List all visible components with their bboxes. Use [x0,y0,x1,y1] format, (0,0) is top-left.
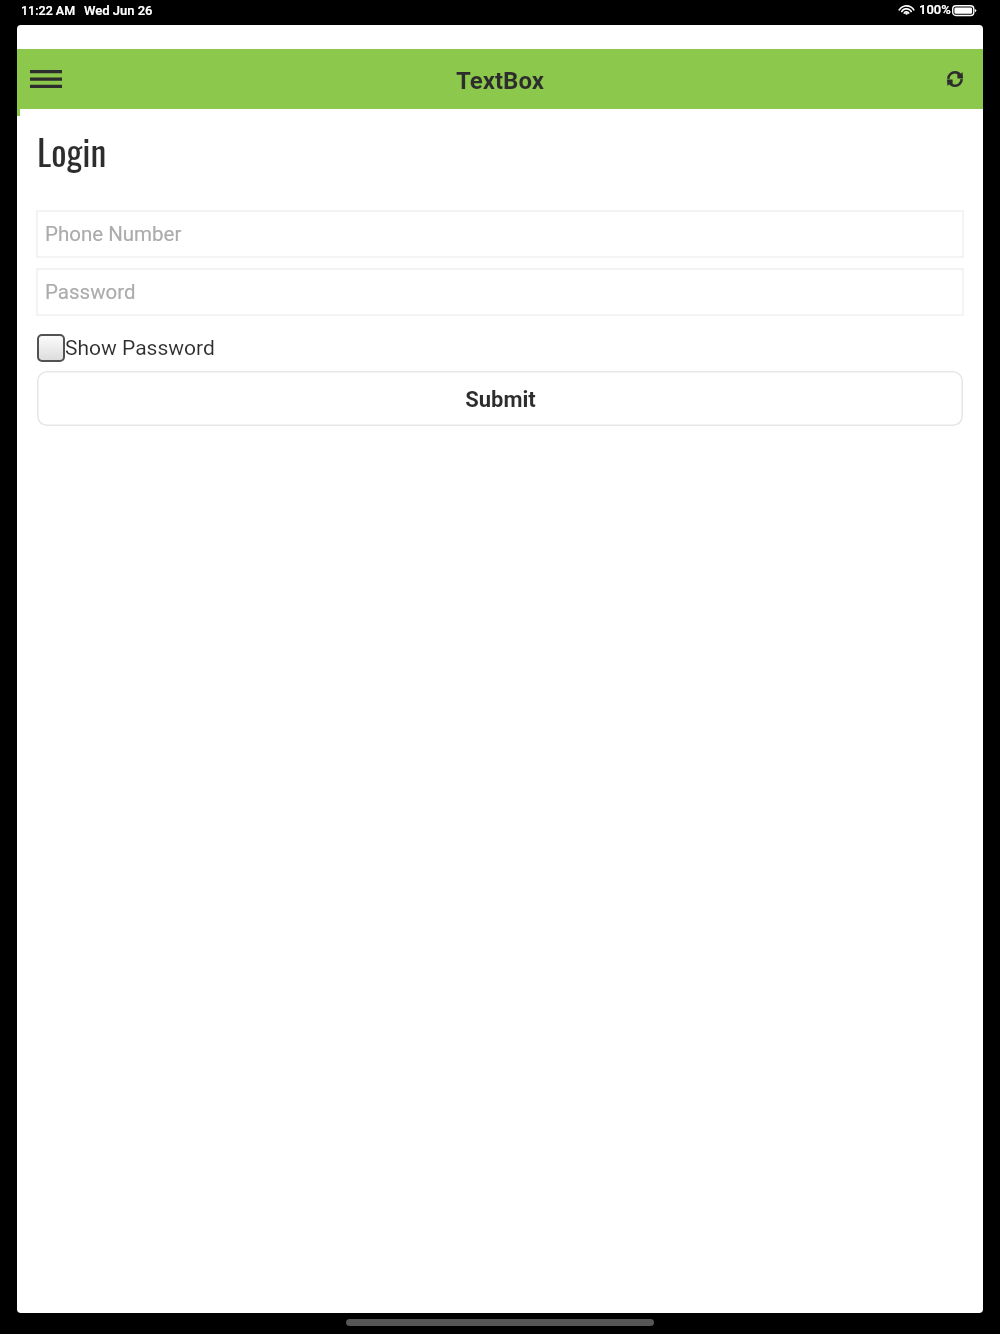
other: Battery full [952,5,978,17]
staticText: Wed Jun 26 [84,3,153,18]
button[interactable]: Submit [37,371,963,426]
button[interactable]: Password [37,269,963,315]
button[interactable]: Refresh [935,59,975,99]
staticText: Password [45,280,136,304]
button[interactable]: Open navigation menu [22,55,70,103]
staticText: Phone Number [45,222,182,246]
staticText: Login [37,124,107,177]
button[interactable]: Show Password [37,334,215,362]
other: Wi-Fi [899,5,914,15]
button[interactable]: Phone Number [37,211,963,257]
staticText: 11:22 AM [21,3,76,18]
staticText: Submit [465,387,536,413]
staticText: Show Password [65,336,215,361]
staticText: 100% [919,2,951,17]
staticText: TextBox [456,67,544,95]
